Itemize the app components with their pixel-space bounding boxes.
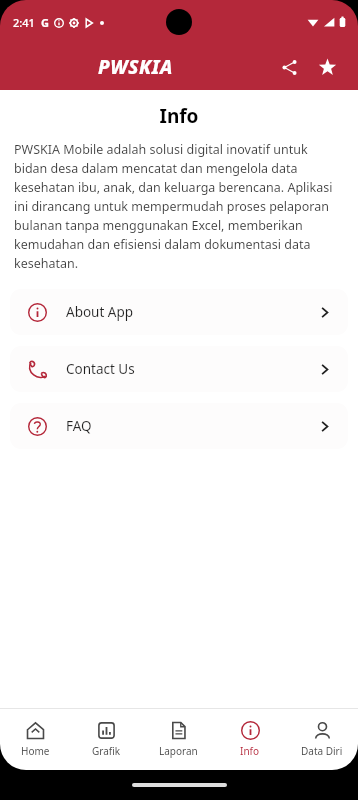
staticText: Grafik xyxy=(92,744,121,758)
staticText: Info xyxy=(0,103,358,129)
staticText: G xyxy=(41,15,49,30)
staticText: About App xyxy=(66,303,134,321)
staticText: Info xyxy=(240,744,260,758)
button[interactable]: Grafik xyxy=(71,708,142,770)
button[interactable]: Laporan xyxy=(142,708,214,770)
button[interactable]: Favorite xyxy=(310,50,344,84)
staticText: FAQ xyxy=(66,417,92,435)
button[interactable]: Share xyxy=(272,50,306,84)
staticText: PWSKIA Mobile adalah solusi digital inov… xyxy=(14,141,344,272)
staticText: Home xyxy=(21,744,50,758)
button[interactable]: About App xyxy=(10,289,348,335)
button[interactable]: Home xyxy=(0,708,71,770)
staticText: 2:41 xyxy=(13,15,35,30)
staticText: Laporan xyxy=(159,744,198,758)
staticText: Contact Us xyxy=(66,360,135,378)
staticText: PWSKIA xyxy=(98,54,174,80)
button[interactable]: Data Diri xyxy=(286,708,358,770)
button[interactable]: Info xyxy=(214,708,286,770)
button[interactable]: Contact Us xyxy=(10,346,348,392)
staticText: Data Diri xyxy=(301,744,343,758)
button[interactable]: FAQ xyxy=(10,403,348,449)
